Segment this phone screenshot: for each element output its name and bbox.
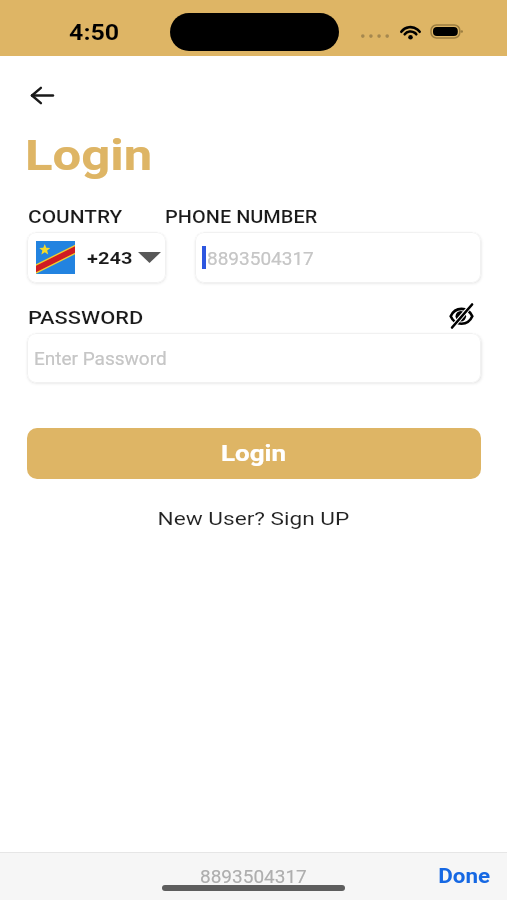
button[interactable]: Enter Password — [27, 333, 481, 383]
button[interactable]: Back — [18, 71, 66, 119]
staticText: COUNTRY — [28, 205, 123, 227]
staticText: Login — [221, 441, 287, 467]
button[interactable]: 8893504317 — [195, 232, 481, 283]
button[interactable]: Show password — [443, 298, 479, 334]
button[interactable]: New User? Sign UP — [167, 503, 341, 533]
staticText: Login — [25, 131, 153, 180]
staticText: PHONE NUMBER — [165, 205, 317, 227]
staticText: 4:50 — [69, 20, 120, 46]
button[interactable]: Login — [27, 428, 481, 479]
staticText: 8893504317 — [207, 247, 314, 269]
button[interactable]: Done — [441, 864, 507, 887]
staticText: PASSWORD — [28, 306, 144, 328]
button[interactable]: 8893504317 — [200, 865, 307, 887]
staticText: Enter Password — [34, 347, 167, 369]
button[interactable]: +243 — [27, 232, 166, 283]
staticText: +243 — [87, 248, 133, 268]
